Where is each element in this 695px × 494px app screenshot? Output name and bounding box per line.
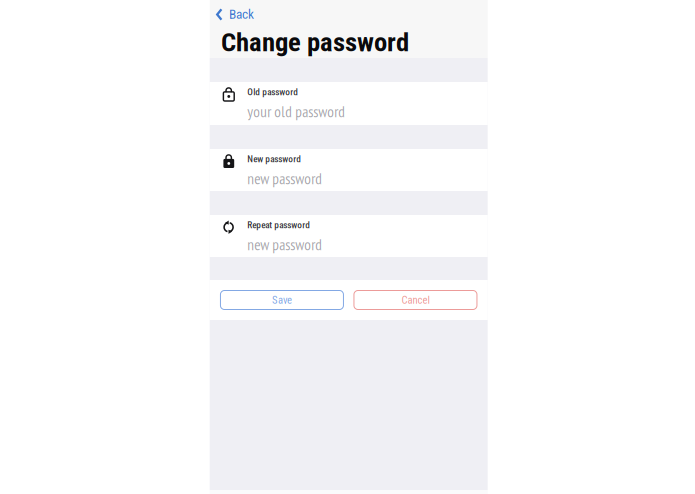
staticText: Cancel <box>401 294 429 306</box>
button[interactable]: Cancel <box>354 290 477 309</box>
staticText: new password <box>247 169 322 188</box>
button[interactable]: Back <box>210 0 262 28</box>
staticText: Save <box>272 294 292 306</box>
staticText: Repeat password <box>247 220 310 230</box>
staticText: Back <box>229 6 254 22</box>
button[interactable]: New password <box>210 149 488 191</box>
button[interactable]: Repeat password <box>210 215 488 257</box>
button[interactable]: Old password <box>210 82 488 125</box>
button[interactable]: Save <box>220 290 343 309</box>
staticText: your old password <box>247 102 345 121</box>
staticText: New password <box>247 154 301 164</box>
staticText: new password <box>247 235 322 254</box>
staticText: Old password <box>247 87 298 97</box>
staticText: Change password <box>221 26 409 58</box>
